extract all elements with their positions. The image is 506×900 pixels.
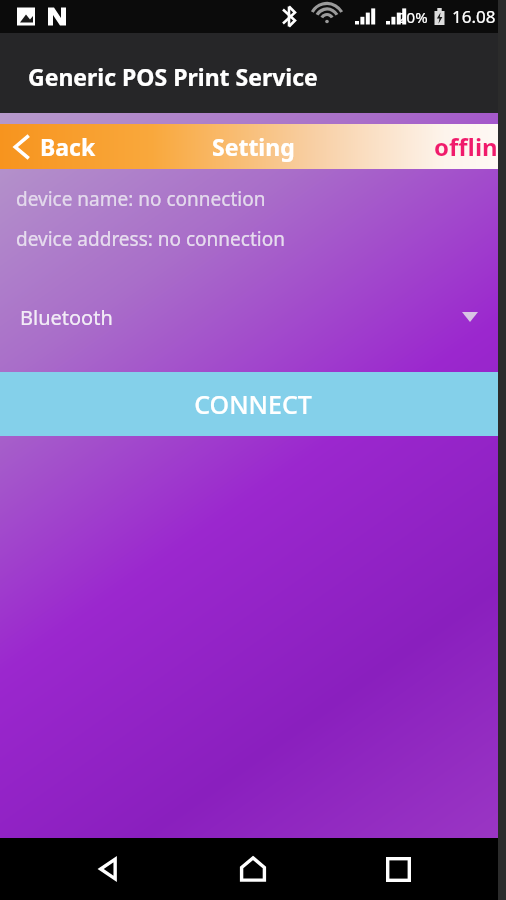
staticText: Back: [40, 131, 96, 162]
staticText: offline: [434, 130, 506, 163]
staticText: 20%: [398, 7, 428, 27]
staticText: Generic POS Print Service: [28, 61, 318, 92]
button[interactable]: Back: [73, 838, 145, 900]
button[interactable]: CONNECT: [0, 372, 506, 436]
button[interactable]: Recents: [362, 838, 434, 900]
staticText: device name: no connection: [16, 186, 266, 212]
button[interactable]: Back: [10, 124, 169, 169]
button[interactable]: Bluetooth: [0, 289, 506, 345]
staticText: device address: no connection: [16, 226, 285, 252]
staticText: Bluetooth: [20, 304, 113, 331]
staticText: Setting: [212, 131, 295, 162]
staticText: 16.08: [452, 5, 496, 28]
staticText: CONNECT: [194, 387, 312, 421]
button[interactable]: Home: [217, 838, 289, 900]
